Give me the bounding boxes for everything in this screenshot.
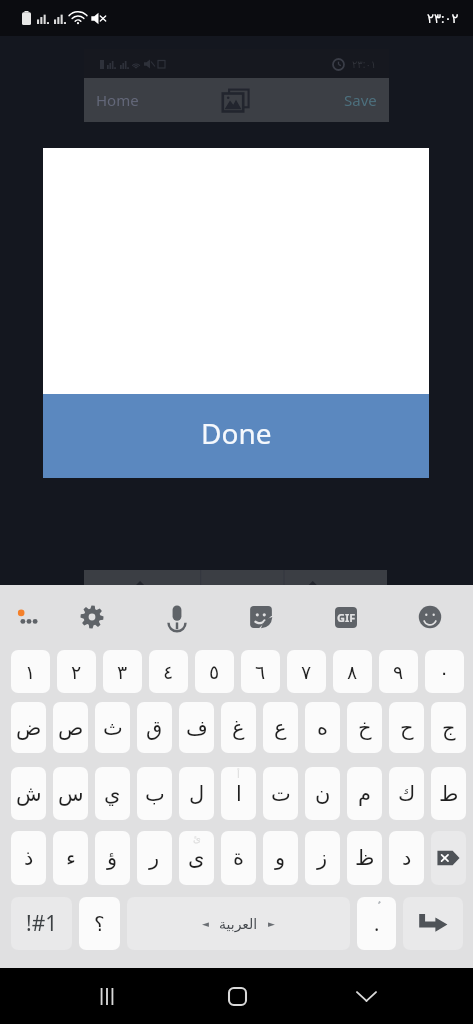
staticText: العربية [219, 916, 258, 932]
staticText: ع [274, 716, 287, 740]
staticText: ح [400, 716, 414, 740]
button[interactable]: ز [305, 831, 340, 885]
button[interactable]: ن [305, 767, 340, 820]
button[interactable]: غ [221, 702, 256, 753]
staticText: ض [16, 716, 42, 740]
staticText: ر [149, 846, 160, 870]
button[interactable]: ش [11, 767, 46, 820]
button[interactable]: Recents [85, 974, 129, 1018]
staticText: ٤ [163, 661, 174, 683]
button[interactable]: ظ [347, 831, 382, 885]
staticText: ٣ [117, 661, 128, 683]
button[interactable]: ب [137, 767, 172, 820]
button[interactable]: Hide keyboard [344, 974, 388, 1018]
button[interactable]: Settings [75, 600, 109, 634]
staticText: ق [146, 716, 163, 740]
staticText: ؟ [94, 912, 105, 935]
button[interactable]: و [263, 831, 298, 885]
staticText: ٧ [301, 661, 312, 683]
staticText: ت [271, 782, 291, 806]
button[interactable]: أ [221, 767, 256, 820]
staticText: ث [103, 716, 123, 740]
button[interactable]: ج [431, 702, 466, 753]
staticText: ن [315, 782, 331, 806]
button[interactable]: ٧ [287, 650, 326, 693]
staticText: د [402, 846, 412, 870]
button[interactable]: Stickers [244, 600, 278, 634]
button[interactable]: ٢ [57, 650, 96, 693]
staticText: ١ [25, 661, 36, 683]
staticText: ج [442, 716, 456, 740]
button[interactable]: ي [95, 767, 130, 820]
button[interactable]: ٦ [241, 650, 280, 693]
button[interactable]: !#1 [11, 897, 72, 950]
button[interactable]: ٩ [379, 650, 418, 693]
button[interactable]: ق [137, 702, 172, 753]
button[interactable]: More options [12, 600, 46, 634]
button[interactable]: ه [305, 702, 340, 753]
staticText: ك [398, 782, 416, 806]
staticText: ل [189, 782, 205, 806]
button[interactable]: Voice input [160, 600, 194, 634]
staticText: ٢٣:٠٢ [427, 9, 459, 27]
button[interactable]: ف [179, 702, 214, 753]
staticText: أ [237, 769, 240, 781]
button[interactable]: ت [263, 767, 298, 820]
staticText: Save [344, 90, 377, 110]
button[interactable]: ض [11, 702, 46, 753]
button[interactable]: Enter [403, 897, 463, 950]
staticText: س [58, 782, 84, 806]
button[interactable]: ٤ [149, 650, 188, 693]
staticText: ► [268, 919, 275, 929]
staticText: ٠ [439, 661, 450, 683]
button[interactable]: ئ [179, 831, 214, 885]
button[interactable]: ط [431, 767, 466, 820]
button[interactable]: س [53, 767, 88, 820]
staticText: ة [233, 846, 245, 870]
button[interactable]: ة [221, 831, 256, 885]
button[interactable]: ٣ [103, 650, 142, 693]
button[interactable]: Emoji [413, 600, 447, 634]
staticText: Done [201, 414, 272, 452]
button[interactable]: ٨ [333, 650, 372, 693]
staticText: ز [317, 846, 328, 870]
staticText: ف [186, 716, 208, 740]
button[interactable]: خ [347, 702, 382, 753]
button[interactable]: ل [179, 767, 214, 820]
button[interactable]: ث [95, 702, 130, 753]
button[interactable]: ◄ [127, 897, 350, 950]
button[interactable]: ؟ [79, 897, 120, 950]
staticText: ٥ [209, 661, 220, 683]
button[interactable]: ١ [11, 650, 50, 693]
staticText: ٨ [347, 661, 358, 683]
button[interactable]: ح [389, 702, 424, 753]
button[interactable]: ع [263, 702, 298, 753]
button[interactable]: Backspace [431, 831, 466, 885]
staticText: ذ [24, 846, 34, 870]
button[interactable]: م [347, 767, 382, 820]
button[interactable]: د [389, 831, 424, 885]
button[interactable]: Home [215, 974, 259, 1018]
staticText: ى [188, 846, 205, 870]
staticText: ب [145, 782, 165, 806]
button[interactable]: Done [43, 394, 429, 478]
staticText: GIF [337, 610, 356, 625]
button[interactable]: ء [53, 831, 88, 885]
button[interactable]: GIF [329, 600, 363, 634]
button[interactable]: ر [137, 831, 172, 885]
button[interactable]: ٥ [195, 650, 234, 693]
staticText: ٩ [393, 661, 404, 683]
staticText: ٢٣:٠١ [352, 57, 377, 71]
staticText: خ [358, 716, 372, 740]
button[interactable]: ٠ [425, 650, 464, 693]
staticText: ص [58, 716, 84, 740]
button[interactable]: ذ [11, 831, 46, 885]
button[interactable]: ٌ [357, 897, 396, 950]
staticText: !#1 [26, 909, 58, 938]
staticText: ظ [355, 846, 375, 870]
staticText: م [358, 782, 372, 806]
button[interactable]: ص [53, 702, 88, 753]
button[interactable]: ؤ [95, 831, 130, 885]
staticText: ؤ [107, 846, 118, 870]
button[interactable]: ك [389, 767, 424, 820]
